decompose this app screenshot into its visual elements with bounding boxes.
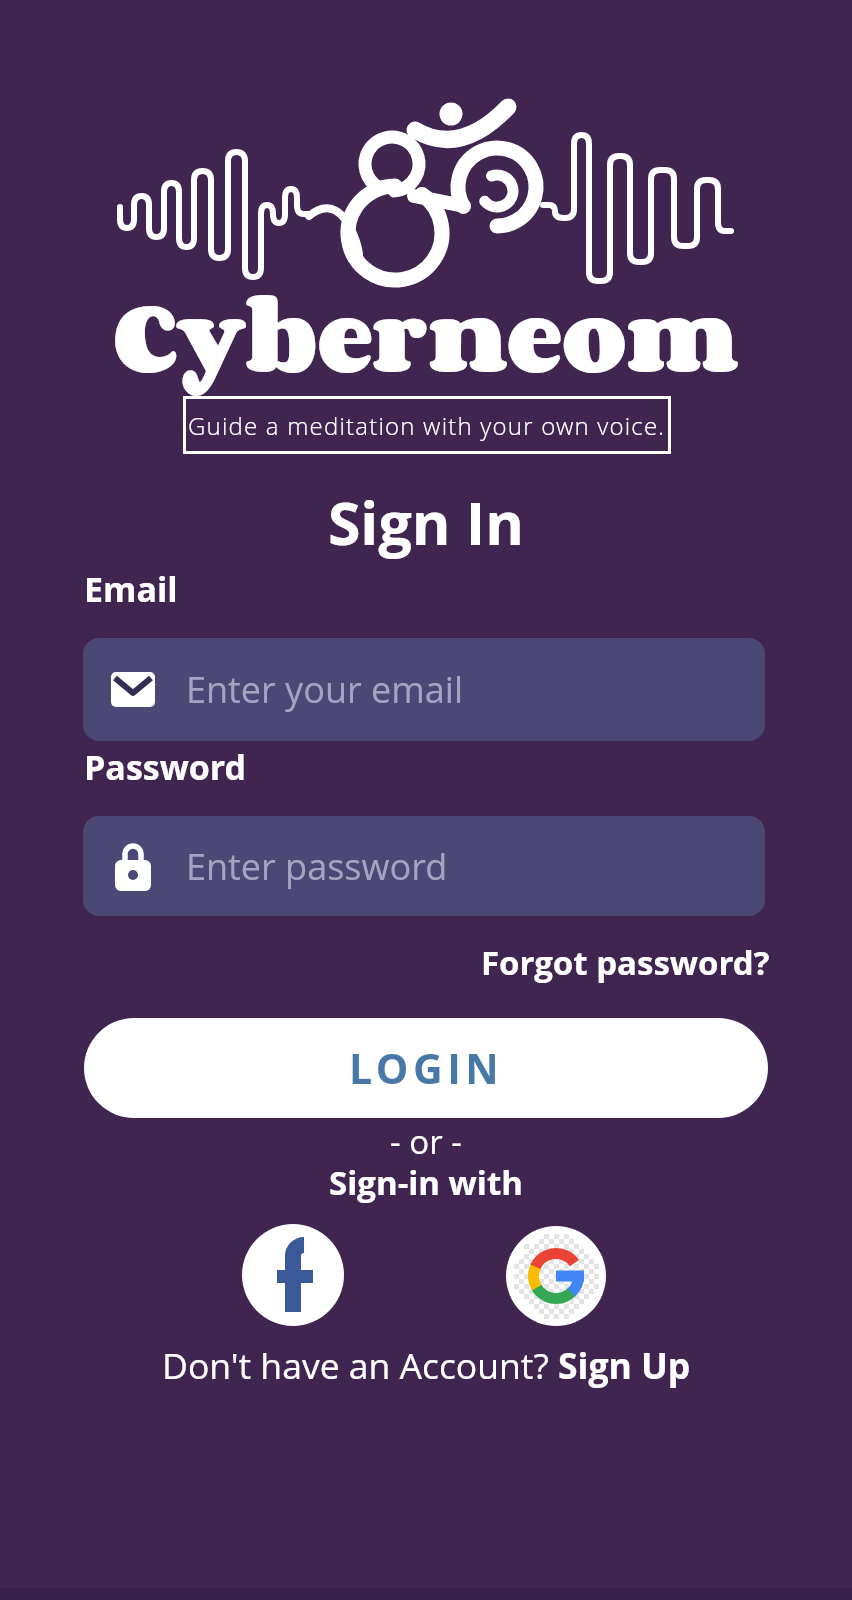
staticText: Enter your email [186,665,464,714]
button[interactable]: Forgot password? [481,940,770,985]
button[interactable]: Don't have an Account? [0,1341,852,1389]
button[interactable]: LOGIN [84,1018,768,1118]
button[interactable]: Enter your email [83,638,765,741]
button[interactable] [506,1226,606,1326]
staticText: Enter password [186,842,448,891]
button[interactable]: Enter password [83,816,765,916]
staticText: Email [84,566,178,612]
staticText: - or - [0,1119,852,1164]
staticText: Password [84,744,247,790]
staticText: LOGIN [349,1040,504,1096]
staticText: Guide a meditation with your own voice. [188,409,666,442]
staticText: Sign Up [558,1341,691,1389]
staticText: Don't have an Account? [162,1341,558,1389]
staticText: Sign-in with [0,1160,852,1205]
button[interactable] [242,1224,344,1326]
staticText: Sign In [0,482,852,562]
staticText: Cyberneom [0,256,852,412]
